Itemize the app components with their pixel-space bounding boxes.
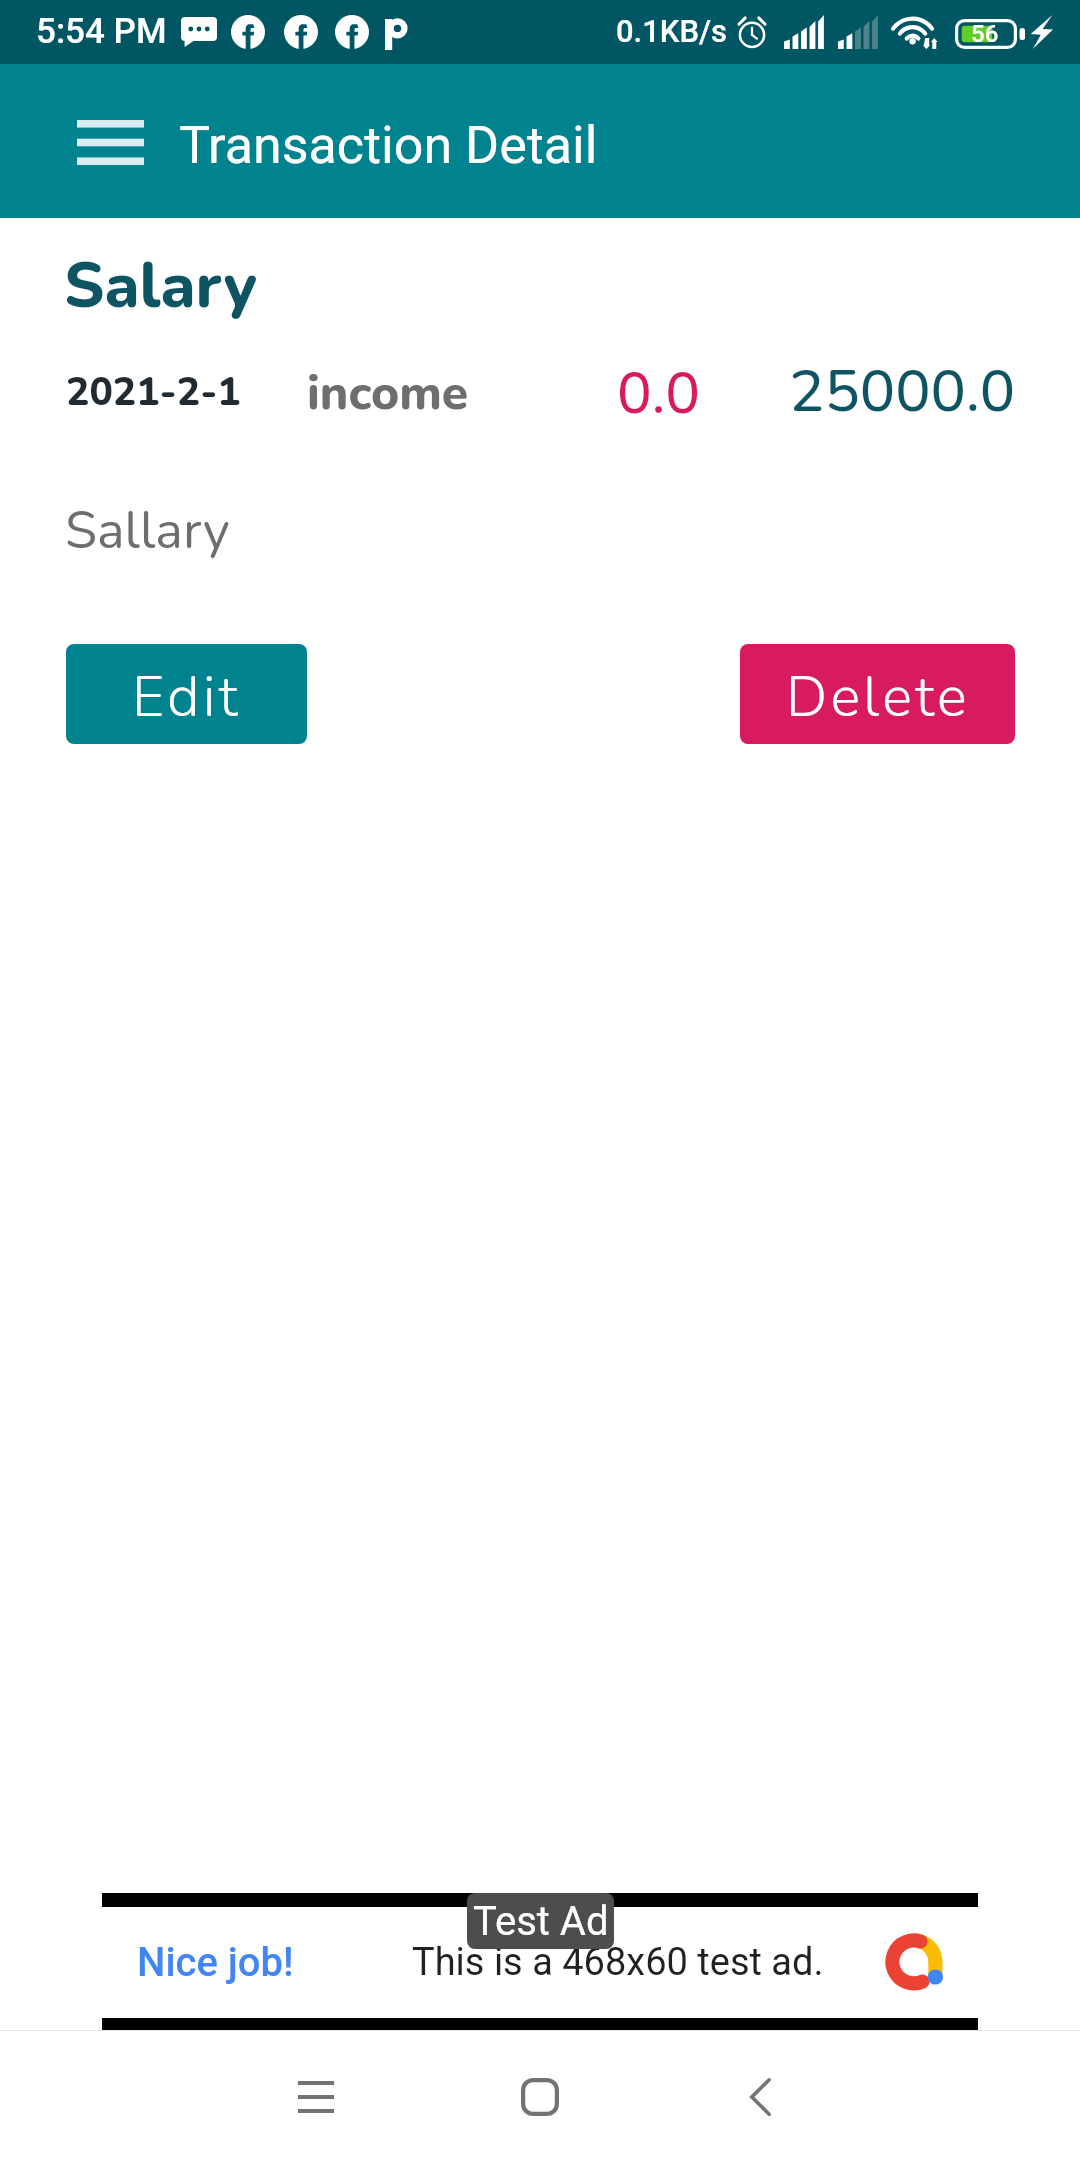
button[interactable]: Nice job! [102,1893,978,2030]
staticText: 0.0 [617,354,701,433]
button[interactable]: Home [500,2057,580,2137]
staticText: Delete [786,659,970,735]
staticText: 2021-2-1 [66,366,241,419]
button[interactable]: Edit [66,644,307,744]
staticText: Test Ad [473,1898,609,1945]
staticText: income [307,360,469,425]
staticText: This is a 468x60 test ad. [412,1940,824,1985]
staticText: 56 [971,20,999,48]
staticText: 25000.0 [789,351,1016,431]
button[interactable]: Delete [740,644,1015,744]
staticText: 0.1KB/s [616,13,728,49]
staticText: Edit [132,659,241,735]
button[interactable]: Recent apps [276,2057,356,2137]
staticText: Transaction Detail [179,115,598,176]
staticText: Sallary [65,495,230,566]
button[interactable]: Open navigation drawer [41,83,179,201]
staticText: Salary [64,243,257,329]
button[interactable]: Back [720,2057,800,2137]
staticText: 5:54 PM [36,11,167,52]
staticText: Nice job! [137,1939,294,1986]
